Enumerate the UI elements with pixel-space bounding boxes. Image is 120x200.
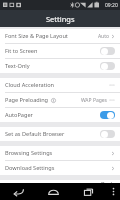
button[interactable]: Text-Only [0,59,120,73]
button[interactable]: Page Preloading [0,93,120,107]
button[interactable]: Browsing Settings [0,146,120,160]
button[interactable]: More options [106,183,120,200]
staticText: Auto [97,33,109,40]
staticText: Fit to Screen [5,47,38,55]
button[interactable]: AutoPager [0,108,120,122]
staticText: Cloud Acceleration [5,81,55,89]
button[interactable]: Fit to Screen [0,44,120,58]
staticText: WAP Pages [80,97,107,104]
button[interactable]: Cloud Acceleration [0,78,120,92]
staticText: Page Preloading [5,96,49,104]
staticText: Download Settings [5,164,55,172]
button[interactable]: Toggle off [100,47,115,55]
button[interactable]: Back [0,183,36,200]
staticText: 09:20 [105,2,118,9]
staticText: Font Size & Page Layout [5,32,68,40]
staticText: Settings [46,14,75,24]
button[interactable]: Recent apps [71,183,106,200]
button[interactable]: Back [0,180,120,183]
staticText: Text-Only [5,62,30,70]
staticText: Set as Default Browser [5,130,65,138]
staticText: Back [101,180,114,183]
button[interactable]: Toggle off [100,130,115,138]
button[interactable]: Set as Default Browser [0,127,120,141]
button[interactable]: Toggle off [100,62,115,70]
staticText: AutoPager [5,111,33,119]
button[interactable]: Font Size & Page Layout [0,29,120,43]
staticText: Browsing Settings [5,149,53,157]
button[interactable]: Download Settings [0,161,120,175]
button[interactable]: Toggle on [100,111,115,119]
button[interactable]: Home [36,183,71,200]
